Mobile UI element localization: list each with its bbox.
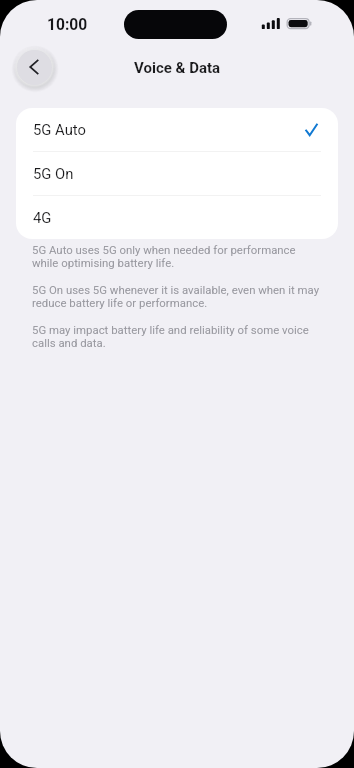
staticText: 5G Auto uses 5G only when needed for per… <box>32 243 323 269</box>
staticText: 5G On <box>33 165 74 182</box>
staticText: 5G Auto <box>33 121 86 138</box>
staticText: 4G <box>33 209 52 226</box>
button[interactable]: 5G Auto <box>16 108 338 151</box>
staticText: 5G On uses 5G whenever it is available, … <box>32 283 323 309</box>
staticText: 5G may impact battery life and reliabili… <box>32 323 323 349</box>
staticText: Voice & Data <box>134 59 221 77</box>
button[interactable]: 4G <box>16 196 338 239</box>
button[interactable]: 5G On <box>16 152 338 195</box>
button[interactable]: Back <box>17 50 52 85</box>
staticText: 10:00 <box>47 16 88 34</box>
